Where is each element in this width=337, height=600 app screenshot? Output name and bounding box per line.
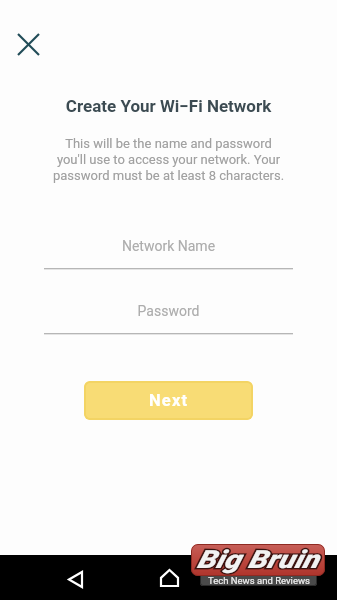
button[interactable]: Back — [57, 561, 93, 597]
staticText: Big Bruin — [197, 545, 319, 574]
staticText: Big Bruin — [197, 545, 319, 574]
button[interactable]: Network Name — [0, 238, 337, 272]
button[interactable]: Password — [0, 303, 337, 337]
button[interactable]: Next — [84, 381, 253, 420]
staticText: Create Your Wi−Fi Network — [0, 96, 337, 116]
button[interactable]: Close — [8, 24, 48, 64]
staticText: Tech News and Reviews — [208, 575, 310, 586]
button[interactable]: Home — [151, 560, 187, 596]
staticText: Network Name — [0, 238, 337, 254]
staticText: Next — [149, 391, 189, 410]
staticText: Password — [0, 303, 337, 319]
staticText: This will be the name and password you'l… — [0, 136, 337, 183]
